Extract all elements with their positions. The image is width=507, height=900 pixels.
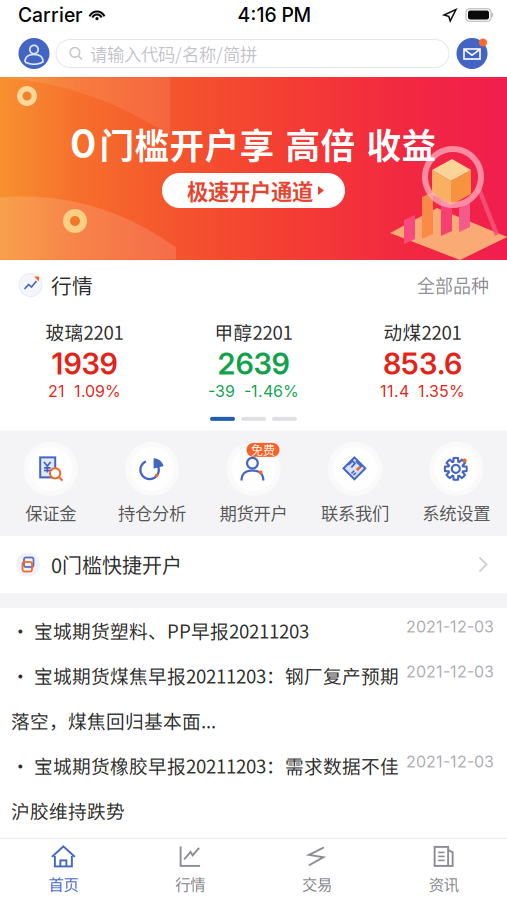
staticText: 落空，煤焦回归基本面... (11, 707, 216, 734)
staticText: 853.6 (383, 346, 462, 381)
staticText: 玻璃2201 (45, 318, 123, 345)
staticText: 保证金 (25, 500, 76, 525)
staticText: 全部品种 (417, 272, 489, 298)
button[interactable]: 动煤2201 (338, 318, 507, 401)
staticText: 持仓分析 (118, 500, 186, 525)
staticText: 1.09% (74, 381, 121, 401)
staticText: · 宝城期货塑料、PP早报20211203 (11, 617, 309, 644)
staticText: 交易 (302, 872, 332, 895)
button[interactable]: 免费 (203, 443, 304, 525)
button[interactable]: · 宝城期货塑料、PP早报20211203 (0, 608, 507, 653)
staticText: 2021-12-03 (406, 752, 494, 771)
button[interactable]: 0 (0, 77, 507, 260)
staticText: 2021-12-03 (406, 662, 494, 681)
staticText: 2639 (217, 346, 289, 381)
button[interactable]: 0门槛快捷开户 (0, 536, 507, 593)
staticText: 甲醇2201 (214, 318, 292, 345)
button[interactable]: Profile (12, 30, 56, 76)
staticText: 1.35% (418, 381, 465, 401)
button[interactable]: 系统设置 (406, 443, 507, 525)
button[interactable]: 行情 (127, 837, 254, 900)
button[interactable]: 联系我们 (304, 443, 406, 525)
button[interactable]: · 宝城期货煤焦早报20211203：钢厂复产预期 (0, 653, 507, 743)
button[interactable]: Messages (449, 30, 495, 76)
staticText: 免费 (251, 441, 275, 459)
button[interactable]: 保证金 (0, 443, 101, 525)
staticText: 资讯 (429, 872, 459, 895)
staticText: 系统设置 (422, 500, 490, 525)
staticText: 首页 (48, 872, 78, 895)
staticText: · 宝城期货橡胶早报20211203：需求数据不佳 (11, 752, 399, 779)
staticText: 11.4 (380, 381, 409, 401)
button[interactable]: 甲醇2201 (169, 318, 338, 401)
staticText: · 宝城期货煤焦早报20211203：钢厂复产预期 (11, 662, 399, 689)
staticText: 21 (48, 381, 65, 401)
staticText: 行情 (51, 270, 93, 300)
staticText: 4:16 PM (237, 3, 311, 27)
button[interactable]: 全部品种 (417, 272, 489, 298)
staticText: 0门槛快捷开户 (51, 550, 182, 579)
staticText: 动煤2201 (383, 318, 461, 345)
staticText: 收益 (366, 119, 436, 169)
staticText: 沪胶维持跌势 (11, 797, 125, 824)
staticText: -39 (208, 381, 235, 401)
staticText: 0 (70, 121, 95, 167)
button[interactable]: 玻璃2201 (0, 318, 169, 401)
button[interactable]: 资讯 (380, 837, 507, 900)
staticText: 行情 (175, 872, 205, 895)
staticText: 门槛开户享 (99, 119, 274, 169)
staticText: 联系我们 (321, 500, 389, 525)
staticText: Carrier (18, 3, 82, 27)
staticText: 期货开户 (219, 500, 287, 525)
button[interactable]: · 宝城期货橡胶早报20211203：需求数据不佳 (0, 743, 507, 833)
staticText: -1.46% (244, 381, 299, 401)
button[interactable]: 交易 (253, 837, 380, 900)
button[interactable]: 首页 (0, 837, 127, 900)
button[interactable]: 持仓分析 (101, 443, 203, 525)
staticText: 极速开户通道 (187, 175, 313, 206)
staticText: 请输入代码/名称/简拼 (90, 41, 257, 66)
staticText: 1939 (51, 346, 117, 381)
staticText: 高倍 (285, 119, 355, 169)
staticText: 2021-12-03 (406, 617, 494, 636)
